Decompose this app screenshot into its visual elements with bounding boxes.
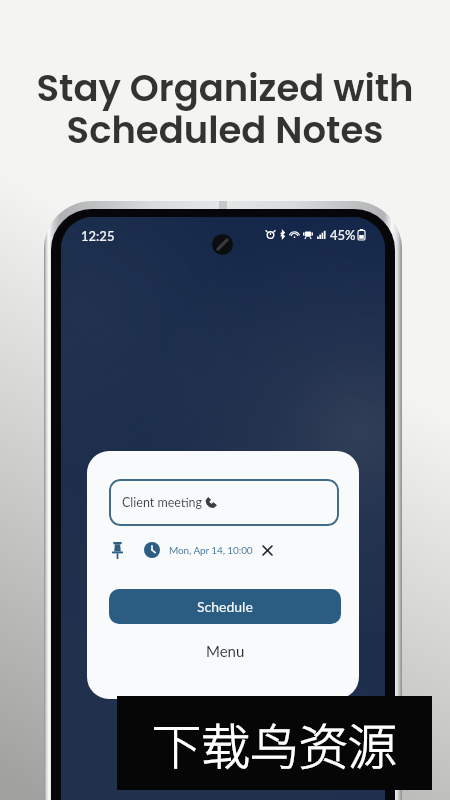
staticText: Client meeting — [122, 495, 203, 510]
staticText: Schedule — [197, 598, 253, 615]
staticText: Mon, Apr 14, 10:00 — [169, 544, 253, 556]
staticText: 下载鸟资源 — [152, 708, 398, 779]
button[interactable]: Menu — [109, 637, 341, 665]
button[interactable]: Remove reminder — [260, 543, 274, 557]
staticText: 12:25 — [81, 228, 115, 244]
staticText: Menu — [206, 642, 245, 660]
button[interactable]: Client meeting — [109, 479, 339, 526]
staticText: 45% — [330, 227, 356, 243]
button[interactable]: Schedule — [109, 589, 341, 624]
button[interactable]: Pin — [110, 540, 124, 560]
staticText: Stay Organized with Scheduled Notes — [0, 62, 450, 156]
